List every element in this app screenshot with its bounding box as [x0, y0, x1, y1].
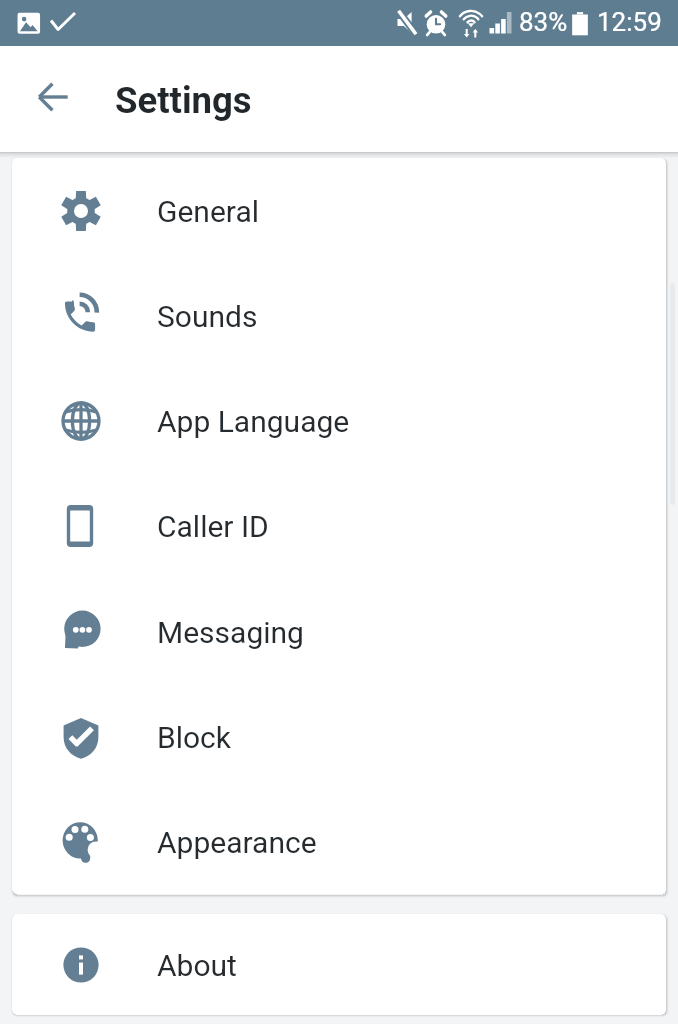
- button[interactable]: Appearance: [12, 789, 666, 894]
- staticText: Caller ID: [157, 509, 269, 544]
- staticText: Block: [157, 720, 232, 755]
- staticText: Settings: [115, 79, 252, 122]
- button[interactable]: About: [12, 914, 666, 1015]
- button[interactable]: Block: [12, 684, 666, 789]
- button[interactable]: App Language: [12, 368, 666, 473]
- button[interactable]: Messaging: [12, 578, 666, 684]
- button[interactable]: General: [12, 158, 666, 263]
- button[interactable]: Caller ID: [12, 473, 666, 578]
- button[interactable]: Back: [9, 55, 97, 143]
- staticText: App Language: [157, 404, 350, 439]
- staticText: General: [157, 194, 260, 229]
- staticText: 83%: [519, 7, 568, 37]
- staticText: Sounds: [157, 299, 258, 334]
- button[interactable]: Sounds: [12, 263, 666, 368]
- staticText: Messaging: [157, 615, 304, 650]
- staticText: About: [157, 948, 237, 983]
- staticText: Appearance: [157, 825, 317, 860]
- staticText: 12:59: [597, 7, 662, 37]
